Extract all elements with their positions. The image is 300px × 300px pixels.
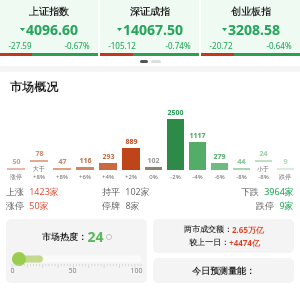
staticText: 跌停 xyxy=(279,173,291,181)
staticText: 跌停 xyxy=(256,200,274,211)
staticText: 279 xyxy=(213,152,226,162)
staticText: 创业板指 xyxy=(231,5,271,18)
button[interactable]: 上证指数 xyxy=(0,0,98,56)
staticText: 1117 xyxy=(189,131,206,141)
staticText: 停牌 xyxy=(102,200,120,211)
button[interactable]: 涨停 xyxy=(6,199,102,211)
staticText: 78 xyxy=(35,149,44,159)
button[interactable]: 889 xyxy=(119,108,142,181)
staticText: 102家 xyxy=(125,185,150,197)
button[interactable]: 44 xyxy=(230,108,252,181)
button[interactable]: 2500 xyxy=(164,108,186,181)
staticText: 2500 xyxy=(167,108,184,118)
staticText: +6% xyxy=(79,173,91,181)
staticText: -2% xyxy=(170,173,181,181)
staticText: 今日预测量能： xyxy=(192,265,255,276)
staticText: 3208.58 xyxy=(228,20,280,39)
staticText: 9家 xyxy=(279,199,294,211)
staticText: -0.67% xyxy=(64,40,90,51)
staticText: 下跌 xyxy=(241,186,259,197)
staticText: 9 xyxy=(283,157,288,167)
staticText: 50家 xyxy=(29,199,49,211)
staticText: +4% xyxy=(102,173,114,181)
staticText: -27.59 xyxy=(8,40,32,51)
staticText: 两市成交额： xyxy=(184,224,232,234)
staticText: -105.12 xyxy=(108,40,136,51)
button[interactable]: 116 xyxy=(73,108,96,181)
button[interactable]: 下跌 xyxy=(198,185,294,197)
button[interactable]: 市场热度： xyxy=(6,219,147,283)
button[interactable]: 上涨 xyxy=(6,185,102,197)
staticText: 3964家 xyxy=(264,185,294,197)
staticText: +8% xyxy=(56,173,68,181)
button[interactable]: 两市成交额： xyxy=(153,219,294,253)
staticText: 889 xyxy=(125,137,138,147)
staticText: +8% xyxy=(33,173,45,181)
staticText: 深证成指 xyxy=(130,5,170,18)
staticText: 50 xyxy=(68,266,77,276)
staticText: 上涨 xyxy=(6,186,24,197)
staticText: 持平 xyxy=(102,186,120,197)
button[interactable]: 24 xyxy=(252,100,274,181)
staticText: 44 xyxy=(237,157,246,167)
staticText: 上证指数 xyxy=(29,5,69,18)
staticText: +2% xyxy=(125,173,137,181)
staticText: 较上一日： xyxy=(189,237,229,247)
button[interactable]: 深证成指 xyxy=(100,0,199,56)
staticText: 24 xyxy=(87,227,104,246)
staticText: 24 xyxy=(259,149,268,159)
staticText: 116 xyxy=(79,156,92,166)
staticText: 47 xyxy=(58,157,67,167)
staticText: 0 xyxy=(10,266,15,276)
button[interactable]: 停牌 xyxy=(102,199,198,211)
staticText: 涨停 xyxy=(6,200,24,211)
staticText: -4% xyxy=(192,173,203,181)
button[interactable]: 50 xyxy=(4,108,27,181)
staticText: 50 xyxy=(12,157,21,167)
staticText: 102 xyxy=(147,156,160,166)
button[interactable]: 创业板指 xyxy=(201,0,300,56)
staticText: 小于 xyxy=(257,165,269,173)
staticText: 293 xyxy=(102,152,115,162)
button[interactable]: 9 xyxy=(274,108,296,181)
staticText: 市场概况 xyxy=(10,79,58,94)
button[interactable]: 持平 xyxy=(102,185,198,197)
staticText: 8家 xyxy=(125,199,140,211)
staticText: -6% xyxy=(214,173,225,181)
staticText: 0% xyxy=(149,173,158,181)
other: 说明 xyxy=(106,234,112,240)
button[interactable]: 293 xyxy=(96,108,119,181)
staticText: -20.72 xyxy=(209,40,233,51)
button[interactable]: 跌停 xyxy=(198,199,294,211)
button[interactable]: 279 xyxy=(208,108,230,181)
staticText: 市场热度： xyxy=(42,231,87,242)
staticText: 100 xyxy=(130,266,143,276)
staticText: -0.64% xyxy=(266,40,292,51)
staticText: -0.74% xyxy=(165,40,191,51)
staticText: 14067.50 xyxy=(123,20,183,39)
staticText: 涨停 xyxy=(10,173,22,181)
button[interactable]: 1117 xyxy=(186,108,208,181)
staticText: 大于 xyxy=(33,165,45,173)
staticText: -8% xyxy=(258,173,269,181)
staticText: -8% xyxy=(236,173,247,181)
staticText: +4474亿 xyxy=(229,237,260,248)
button[interactable]: 102 xyxy=(142,108,164,181)
staticText: 4096.60 xyxy=(26,20,78,39)
staticText: 2.65万亿 xyxy=(232,224,264,235)
button[interactable]: 今日预测量能： xyxy=(153,258,294,283)
button[interactable]: 47 xyxy=(50,108,73,181)
button[interactable]: 78 xyxy=(27,100,50,181)
staticText: 1423家 xyxy=(29,185,59,197)
